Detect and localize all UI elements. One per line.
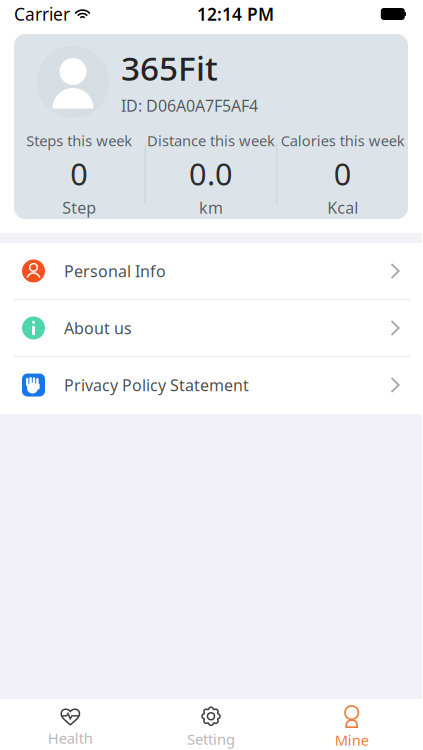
- staticText: 0: [334, 153, 352, 194]
- staticText: Step: [62, 197, 96, 218]
- staticText: Carrier: [14, 2, 70, 25]
- staticText: Calories this week: [281, 131, 405, 150]
- button[interactable]: Personal Info: [0, 243, 422, 300]
- staticText: 365Fit: [121, 46, 218, 90]
- staticText: km: [199, 197, 223, 218]
- staticText: 0: [70, 153, 88, 194]
- staticText: About us: [64, 317, 132, 339]
- button[interactable]: Mine: [281, 694, 422, 750]
- staticText: Privacy Policy Statement: [64, 374, 249, 396]
- staticText: 0.0: [189, 153, 233, 194]
- staticText: Distance this week: [147, 131, 275, 150]
- staticText: Mine: [335, 730, 369, 750]
- staticText: 12:14 PM: [197, 2, 274, 25]
- staticText: Personal Info: [64, 260, 166, 282]
- staticText: Kcal: [327, 197, 358, 218]
- staticText: Steps this week: [26, 131, 132, 150]
- button[interactable]: Health: [0, 696, 141, 750]
- button[interactable]: About us: [0, 300, 422, 357]
- button[interactable]: Privacy Policy Statement: [0, 357, 422, 414]
- staticText: ID: D06A0A7F5AF4: [121, 95, 258, 116]
- button[interactable]: Setting: [141, 695, 281, 750]
- staticText: Health: [48, 728, 93, 748]
- staticText: Setting: [187, 729, 235, 749]
